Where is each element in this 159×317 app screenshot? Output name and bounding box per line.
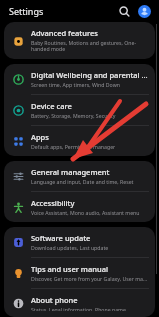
button[interactable]: Search (116, 3, 132, 19)
staticText: Baby Routines, Motions and gestures, One… (31, 39, 149, 53)
button[interactable]: Software update (4, 227, 155, 257)
button[interactable]: Account (136, 3, 152, 19)
button[interactable]: Accessibility (4, 192, 155, 222)
staticText: Default apps, Permission manager (31, 143, 116, 150)
button[interactable]: Advanced features (4, 22, 155, 59)
button[interactable]: Tips and user manual (4, 258, 155, 288)
staticText: Discover, Get more from your Galaxy, Use… (31, 275, 149, 282)
button[interactable]: General management (4, 161, 155, 191)
button[interactable]: Digital Wellbeing and parental controls (4, 64, 155, 94)
staticText: Download updates, Last update (31, 244, 109, 251)
staticText: General management (31, 167, 110, 177)
staticText: Status, Legal information, Phone name (31, 306, 126, 311)
staticText: About phone (31, 295, 78, 305)
staticText: Apps (31, 132, 49, 142)
staticText: Accessibility (31, 198, 75, 208)
staticText: Device care (31, 101, 72, 111)
staticText: Screen time, App timers, Wind Down (31, 81, 120, 88)
button[interactable]: Device care (4, 95, 155, 125)
button[interactable]: About phone (4, 289, 155, 317)
staticText: Language and input, Date and time, Reset (31, 178, 134, 185)
staticText: Tips and user manual (31, 264, 108, 274)
staticText: Software update (31, 233, 91, 243)
staticText: Digital Wellbeing and parental controls (31, 70, 149, 80)
button[interactable]: Apps (4, 126, 155, 156)
staticText: Voice Assistant, Mono audio, Assistant m… (31, 209, 140, 216)
staticText: Settings (9, 5, 44, 17)
staticText: Battery, Storage, Memory, Security (31, 112, 116, 119)
staticText: Advanced features (31, 28, 98, 38)
